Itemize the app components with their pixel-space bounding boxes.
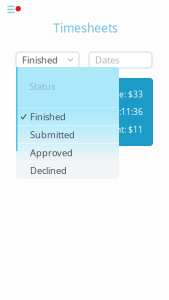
button[interactable]: Dates <box>89 52 152 68</box>
staticText: Finished <box>22 54 58 66</box>
button[interactable]: Rate: $33 <box>85 78 153 146</box>
button[interactable]: Submitted <box>16 125 119 143</box>
button[interactable]: Finished <box>16 107 119 125</box>
staticText: Approved <box>30 146 73 159</box>
staticText: Amount: $11 <box>94 124 143 135</box>
button[interactable]: Declined <box>16 161 119 179</box>
staticText: Submitted <box>30 128 75 141</box>
button[interactable]: Menu <box>0 0 26 18</box>
staticText: Finished <box>30 111 66 123</box>
staticText: Declined <box>30 164 67 177</box>
staticText: 21:11:36 <box>109 107 143 117</box>
staticText: Timesheets <box>53 20 118 36</box>
staticText: Status <box>29 80 55 92</box>
button[interactable]: Approved <box>16 143 119 161</box>
staticText: Rate: $33 <box>107 89 143 100</box>
button[interactable]: Finished <box>16 52 79 68</box>
staticText: Dates <box>95 54 119 66</box>
